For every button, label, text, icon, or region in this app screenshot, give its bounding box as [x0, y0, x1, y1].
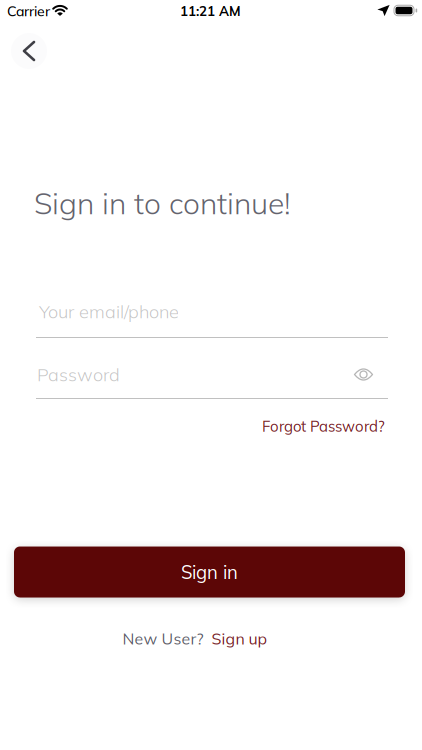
button[interactable]: Forgot Password?	[262, 417, 385, 435]
button[interactable]: Password	[36, 358, 388, 399]
button[interactable]: Your email/phone	[36, 297, 388, 338]
staticText: Carrier	[7, 2, 50, 20]
staticText: Your email/phone	[39, 300, 179, 323]
staticText: New User?	[122, 628, 203, 648]
staticText: Sign up	[211, 628, 267, 648]
staticText: Sign in to continue!	[34, 184, 291, 222]
button[interactable]: Back	[7, 29, 51, 73]
staticText: Sign in	[181, 560, 238, 584]
button[interactable]: Sign in	[14, 546, 405, 597]
button[interactable]: Sign up	[211, 628, 267, 648]
staticText: Password	[37, 363, 120, 386]
staticText: 11:21 AM	[180, 3, 241, 19]
button[interactable]: Show password	[348, 361, 378, 387]
staticText: Forgot Password?	[262, 417, 385, 435]
